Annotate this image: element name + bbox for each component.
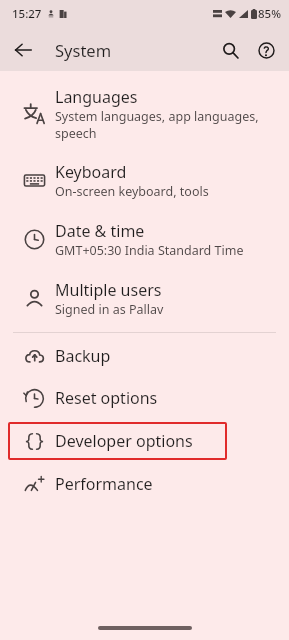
staticText: Developer options (55, 430, 193, 452)
button[interactable]: Backup (0, 335, 289, 377)
button[interactable]: Keyboard (0, 151, 289, 210)
button[interactable]: Performance (0, 463, 289, 505)
staticText: 85% (258, 6, 281, 22)
staticText: System (55, 39, 112, 61)
staticText: On-screen keyboard, tools (55, 183, 209, 200)
staticText: Multiple users (55, 279, 162, 301)
staticText: Date & time (55, 220, 145, 242)
button[interactable]: Multiple users (0, 269, 289, 328)
button[interactable]: Help (248, 32, 284, 68)
button[interactable]: Developer options (8, 422, 227, 460)
staticText: Languages (55, 86, 138, 108)
button[interactable]: Search (212, 32, 248, 68)
staticText: Performance (55, 473, 153, 495)
staticText: Keyboard (55, 161, 127, 183)
staticText: Reset options (55, 387, 158, 409)
button[interactable]: Back (5, 32, 41, 68)
button[interactable]: Languages (0, 76, 289, 151)
staticText: 15:27 (12, 6, 42, 22)
button[interactable]: Date & time (0, 210, 289, 269)
button[interactable]: Reset options (0, 377, 289, 419)
staticText: Signed in as Pallav (55, 301, 164, 318)
staticText: Backup (55, 345, 111, 367)
staticText: GMT+05:30 India Standard Time (55, 242, 244, 259)
staticText: System languages, app languages, speech (55, 108, 259, 141)
